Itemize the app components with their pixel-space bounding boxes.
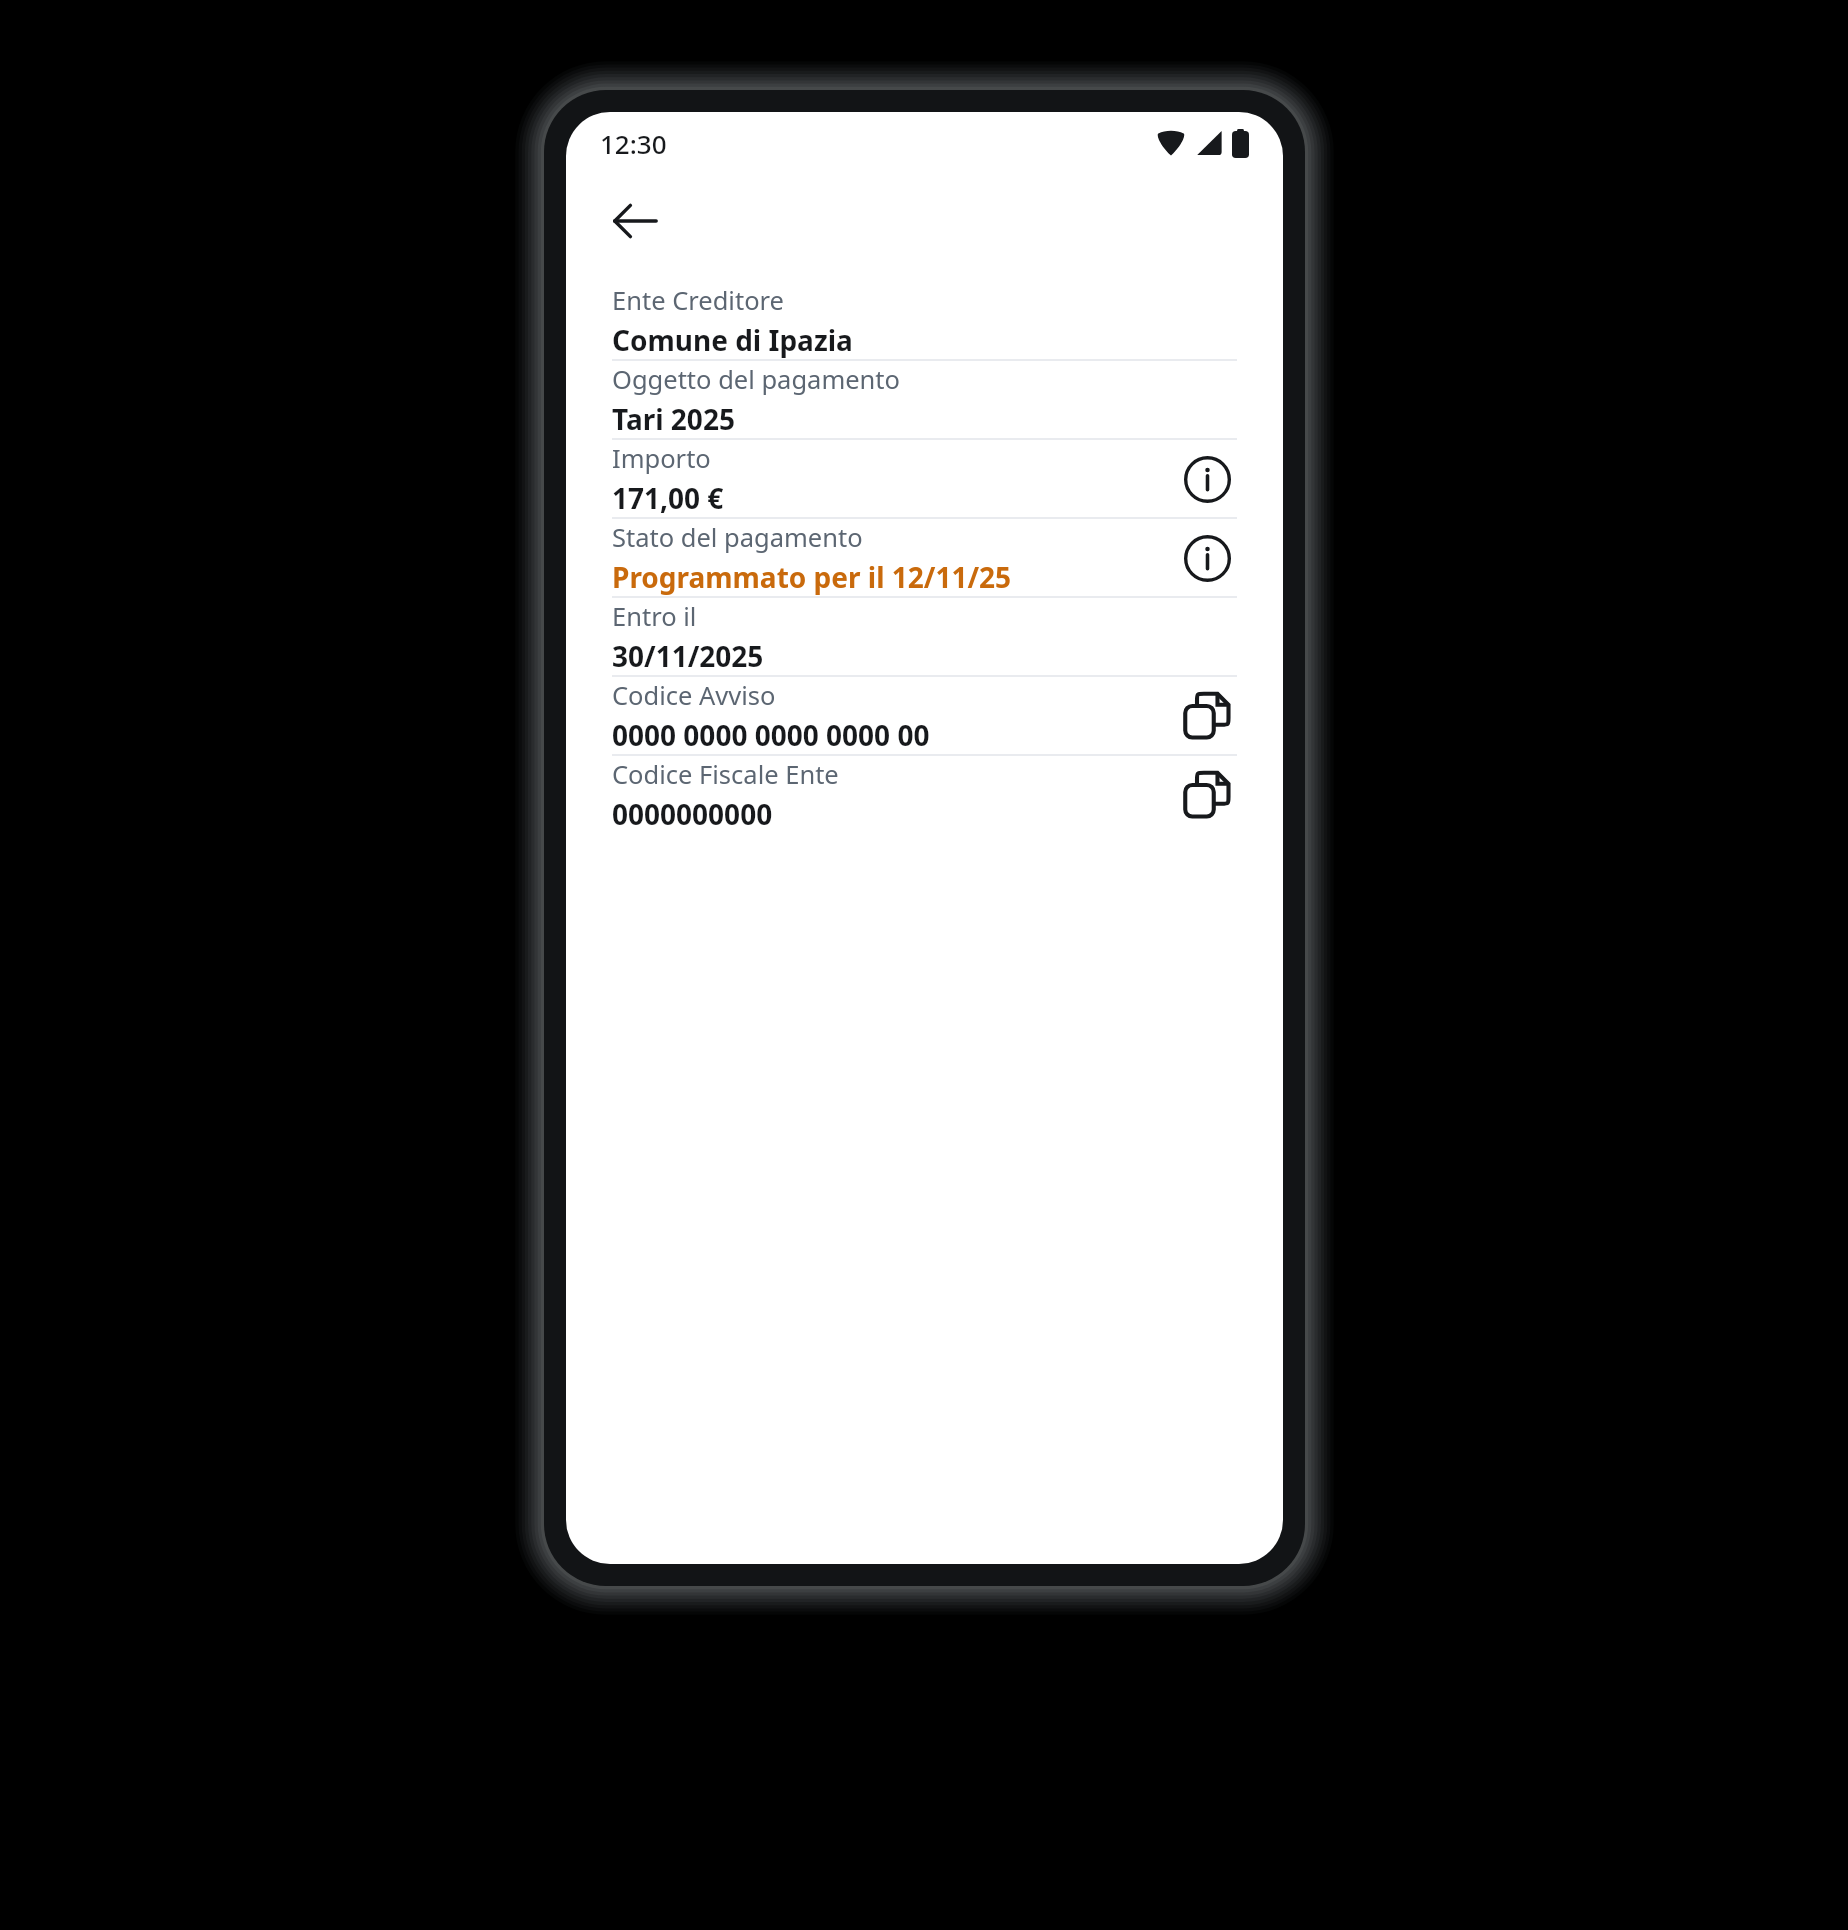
button[interactable]: Back xyxy=(596,182,674,260)
button[interactable]: Copia xyxy=(1177,765,1237,825)
staticText: 30/11/2025 xyxy=(612,637,764,675)
staticText: Stato del pagamento xyxy=(612,520,863,555)
staticText: Ente Creditore xyxy=(612,283,784,318)
staticText: Tari 2025 xyxy=(612,400,735,438)
button[interactable]: Informazioni xyxy=(1177,449,1237,509)
staticText: 0000 0000 0000 0000 00 xyxy=(612,716,930,754)
button[interactable]: Copia xyxy=(1177,686,1237,746)
staticText: 0000000000 xyxy=(612,795,773,833)
staticText: Programmato per il 12/11/25 xyxy=(612,558,1012,596)
staticText: 171,00 € xyxy=(612,479,724,517)
staticText: Codice Avviso xyxy=(612,678,776,713)
staticText: Comune di Ipazia xyxy=(612,321,853,359)
staticText: Oggetto del pagamento xyxy=(612,362,900,397)
staticText: Importo xyxy=(612,441,711,476)
button[interactable]: Informazioni xyxy=(1177,528,1237,588)
staticText: Codice Fiscale Ente xyxy=(612,757,839,792)
staticText: Entro il xyxy=(612,599,697,634)
staticText: 12:30 xyxy=(600,126,667,161)
